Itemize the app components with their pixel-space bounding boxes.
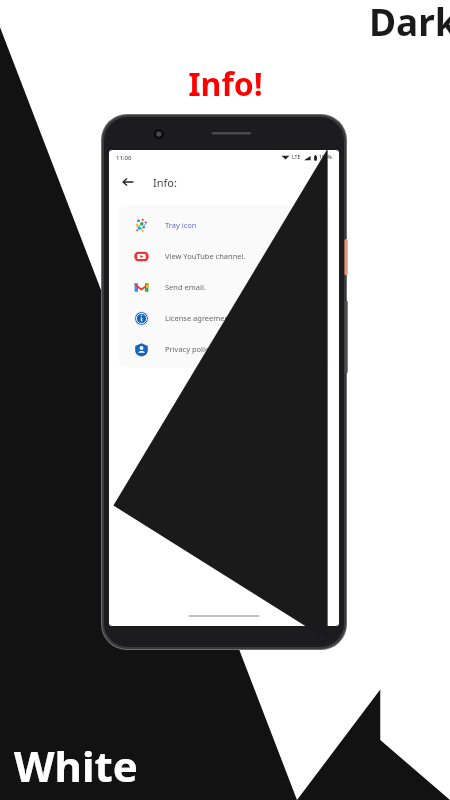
button[interactable]: Tray icon [119, 209, 329, 240]
staticText: Send email. [165, 282, 206, 292]
button[interactable]: Send email. [119, 271, 329, 302]
button[interactable]: Privacy policy. [119, 333, 329, 364]
staticText: 100% [319, 154, 332, 161]
staticText: White [14, 737, 138, 794]
button[interactable]: View YouTube channel. [119, 240, 329, 271]
button[interactable]: Back [117, 171, 139, 193]
staticText: Info! [188, 62, 263, 106]
staticText: License agreement. [165, 313, 234, 323]
staticText: Privacy policy. [165, 344, 215, 354]
staticText: Tray icon [165, 220, 197, 230]
staticText: 11:00 [116, 154, 132, 162]
staticText: Info: [153, 175, 177, 190]
staticText: LTE [292, 154, 301, 161]
button[interactable]: License agreement. [119, 302, 329, 333]
staticText: Dark [369, 0, 450, 46]
staticText: View YouTube channel. [165, 251, 246, 261]
